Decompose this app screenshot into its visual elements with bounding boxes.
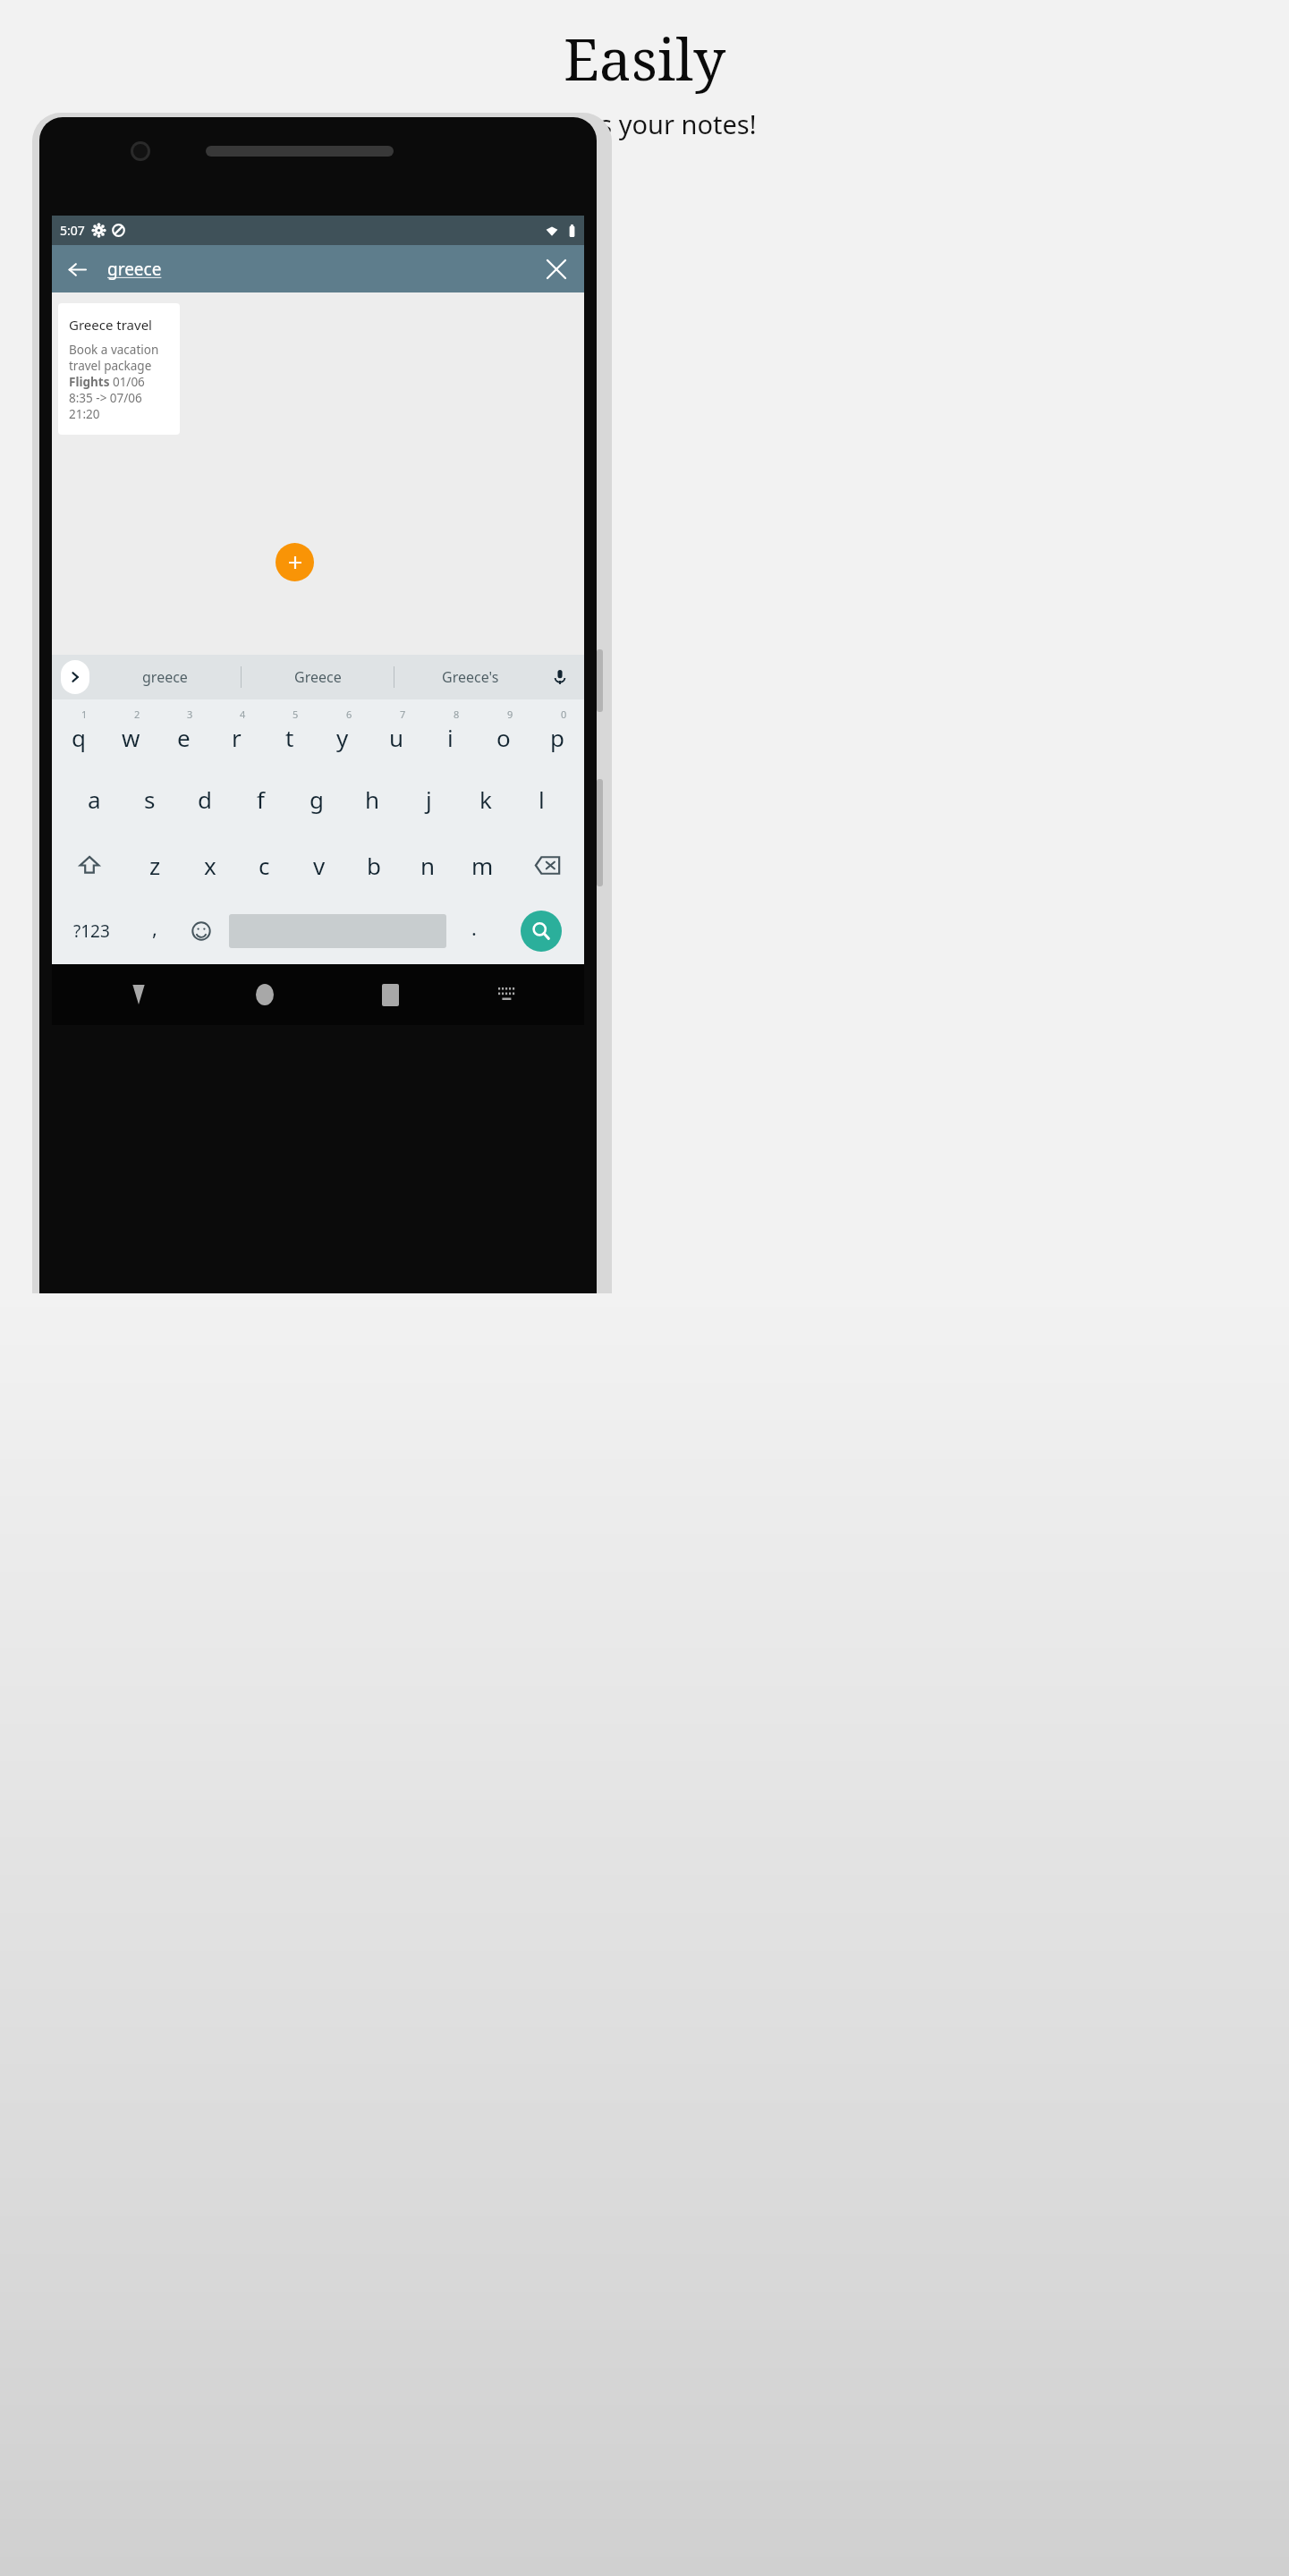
button[interactable]: v [292,832,346,898]
button[interactable]: Add note [276,543,314,581]
staticText: a [88,784,101,815]
button[interactable]: Back [75,964,201,1025]
staticText: 6 [346,708,352,721]
button[interactable]: 1 [52,699,105,766]
button[interactable]: f [233,766,288,832]
button[interactable]: Home [201,964,327,1025]
button[interactable]: 3 [157,699,210,766]
staticText: Book a vacation travel package [69,342,171,374]
button[interactable]: 7 [369,699,423,766]
staticText: b [367,850,381,881]
button[interactable]: 9 [477,699,530,766]
button[interactable]: . [450,898,498,964]
button[interactable]: m [455,832,510,898]
button[interactable]: Greece's [394,655,547,699]
staticText: Flights 01/06 8:35 -> 07/06 21:20 [69,374,171,422]
staticText: v [313,850,326,881]
button[interactable]: l [513,766,570,832]
button[interactable]: , [131,898,177,964]
staticText: w [122,722,140,753]
button[interactable]: b [346,832,401,898]
button[interactable]: 8 [423,699,477,766]
staticText: o [496,722,511,753]
staticText: f [257,784,265,815]
button[interactable]: g [288,766,344,832]
staticText: Greece [294,667,342,687]
button[interactable]: Search [521,911,562,952]
button[interactable]: 5 [263,699,316,766]
button[interactable]: Recents [327,964,454,1025]
staticText: 7 [400,708,406,721]
button[interactable]: Greece [242,655,394,699]
button[interactable]: k [457,766,513,832]
staticText: z [149,850,161,881]
staticText: 1 [81,708,88,721]
staticText: p [550,722,564,753]
staticText: s [144,784,156,815]
staticText: 5 [293,708,299,721]
button[interactable]: s [122,766,177,832]
staticText: u [389,722,404,753]
staticText: d [198,784,212,815]
button[interactable]: 0 [530,699,584,766]
button[interactable]: c [237,832,292,898]
staticText: h [365,784,380,815]
staticText: 5:07 [60,222,85,239]
staticText: 3 [187,708,193,721]
staticText: k [479,784,492,815]
button[interactable]: Switch keyboard [454,964,561,1025]
staticText: . [471,914,477,941]
staticText: , [152,914,157,941]
button[interactable]: Backspace [510,832,584,898]
staticText: m [471,850,494,881]
button[interactable]: 6 [316,699,369,766]
button[interactable]: x [182,832,237,898]
staticText: 0 [561,708,567,721]
button[interactable]: 4 [210,699,263,766]
staticText: q [72,722,86,753]
staticText: j [426,784,432,815]
staticText: Easily [564,20,726,97]
button[interactable]: 2 [105,699,157,766]
button[interactable]: Voice input [547,664,573,691]
staticText: greece [142,667,188,687]
button[interactable]: greece [89,655,241,699]
button[interactable]: n [401,832,455,898]
staticText: Greece's [442,667,499,687]
button[interactable]: Space [229,914,446,948]
button[interactable]: Greece travel [58,303,180,435]
button[interactable]: d [177,766,233,832]
staticText: e [177,722,191,753]
staticText: x [204,850,216,881]
staticText: l [538,784,545,815]
button[interactable]: a [66,766,122,832]
staticText: g [310,784,324,815]
staticText: 2 [134,708,140,721]
staticText: c [259,850,270,881]
staticText: 9 [507,708,513,721]
staticText: Greece travel [69,316,152,334]
button[interactable]: greece [107,258,162,281]
staticText: r [232,722,242,753]
staticText: ?123 [73,919,110,943]
staticText: 4 [240,708,246,721]
button[interactable]: ?123 [52,898,131,964]
button[interactable]: Shift [52,832,127,898]
button[interactable]: Emoji [177,898,225,964]
button[interactable]: More suggestions [61,660,89,694]
staticText: 8 [454,708,460,721]
staticText: i [447,722,454,753]
staticText: y [336,722,349,753]
button[interactable]: j [401,766,457,832]
staticText: t [285,722,294,753]
staticText: access your notes! [533,106,757,141]
button[interactable]: Clear search [538,250,575,288]
button[interactable]: Back [59,251,95,287]
button[interactable]: z [127,832,182,898]
staticText: n [420,850,436,881]
button[interactable]: h [344,766,401,832]
